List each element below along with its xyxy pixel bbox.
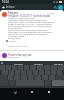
button[interactable]: Back (1, 5, 6, 10)
staticText: Papara (8, 11, 28, 15)
button[interactable]: Sender avatar (2, 12, 7, 17)
button[interactable]: Account (58, 5, 63, 10)
button[interactable]: Back (13, 90, 17, 94)
button[interactable]: Recents (47, 90, 51, 94)
staticText: Hesabını 10.02.2111 tarihine kadar (8, 14, 52, 18)
staticText: etmek istiyorsan 10.02.2111 tarihine kad… (8, 23, 56, 26)
staticText: TOMELI (54, 62, 63, 65)
staticText: Inbox (6, 5, 15, 9)
staticText: Herhangi bir sorunda bize ulaşabilirsin. (8, 33, 56, 36)
staticText: Papara Ekibi (8, 37, 56, 40)
staticText: Papara'ya giriş yapmadın (8, 17, 46, 20)
staticText: kapatılacaktır. (8, 27, 56, 30)
staticText: TOMELI (34, 62, 43, 65)
staticText: tıklayabilir ya da uygulamayı kullanabil… (8, 31, 56, 34)
staticText: 12 Oca (47, 12, 57, 15)
staticText: 10:24 (2, 0, 9, 4)
button[interactable]: Reply (0, 51, 64, 60)
button[interactable]: Attachment (6, 39, 17, 42)
staticText: papara.com/giris-yap (8, 45, 34, 48)
staticText: Cc/Bcc ekle (8, 56, 30, 59)
staticText: TOMELI (14, 62, 23, 65)
button[interactable]: Home (30, 90, 34, 94)
staticText: İyi günler dileriz. (8, 35, 56, 38)
button[interactable]: Search (53, 5, 58, 10)
staticText: giriş yapman gerekiyor. Aksi halde hesab… (8, 25, 56, 28)
staticText: Yanıtını buraya yaz (8, 53, 38, 57)
staticText: fark ettik. Papara hesabını kullanmaya d… (8, 21, 56, 24)
staticText: Yanıtla (9, 39, 17, 42)
staticText: Merhaba, hesabına uzun süredir giriş yap… (8, 19, 56, 22)
staticText: Giriş yapmak için aşağıdaki bağlantıya (8, 29, 56, 32)
